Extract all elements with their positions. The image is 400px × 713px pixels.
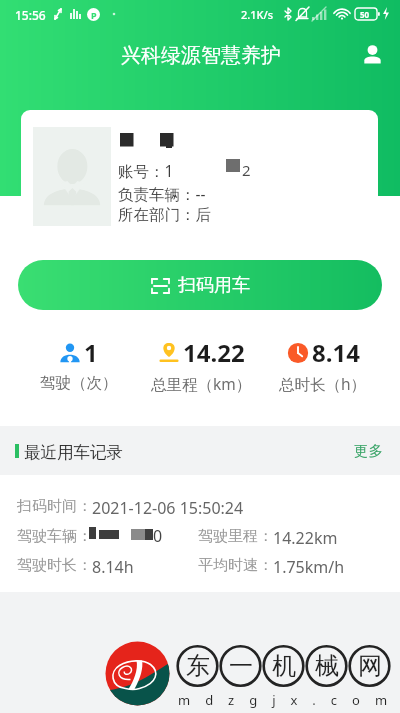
staticText: 网 xyxy=(358,651,382,681)
staticText: 驾驶里程： xyxy=(198,527,273,546)
button[interactable]: 扫码用车 xyxy=(18,260,382,310)
staticText: 扫码用车 xyxy=(178,274,250,297)
button[interactable]: 更多 xyxy=(337,432,400,470)
staticText: 8.14h xyxy=(92,556,134,578)
staticText: 1 xyxy=(84,336,98,369)
button[interactable]: 扫码时间： xyxy=(0,475,400,592)
staticText: 平均时速： xyxy=(198,556,273,575)
staticText: 最近用车记录 xyxy=(24,442,123,463)
staticText: 0 xyxy=(153,525,163,547)
staticText: 15:56 xyxy=(15,7,46,23)
staticText: 东 xyxy=(186,651,210,681)
staticText: 械 xyxy=(315,651,339,681)
staticText: 账号：1 xyxy=(118,160,174,181)
staticText: 一 xyxy=(229,651,253,681)
staticText: 2.1K/s xyxy=(241,7,274,22)
staticText: 兴科绿源智慧养护 xyxy=(121,43,281,68)
staticText: 总时长（h） xyxy=(279,373,367,394)
staticText: 8.14 xyxy=(312,336,360,369)
staticText: 2021-12-06 15:50:24 xyxy=(92,497,244,519)
staticText: 扫码时间： xyxy=(17,497,92,516)
staticText: 驾驶车辆： xyxy=(17,527,92,546)
staticText: 机 xyxy=(272,651,296,681)
staticText: 驾驶时长： xyxy=(17,556,92,575)
button[interactable]: Profile xyxy=(355,37,389,71)
staticText: 14.22km xyxy=(273,527,338,549)
staticText: 所在部门：后 xyxy=(118,205,211,225)
staticText: 总里程（km） xyxy=(151,373,252,394)
staticText: 2 xyxy=(242,160,251,180)
staticText: 更多 xyxy=(354,442,383,460)
staticText: 驾驶（次） xyxy=(40,373,118,393)
staticText: P xyxy=(91,9,97,21)
staticText: m d z g j x . c o m xyxy=(178,691,393,709)
staticText: 14.22 xyxy=(183,336,245,369)
staticText: 1.75km/h xyxy=(273,556,345,578)
button[interactable]: 账号：1 xyxy=(21,110,378,245)
staticText: 50 xyxy=(360,9,370,20)
staticText: 负责车辆：-- xyxy=(118,183,206,204)
